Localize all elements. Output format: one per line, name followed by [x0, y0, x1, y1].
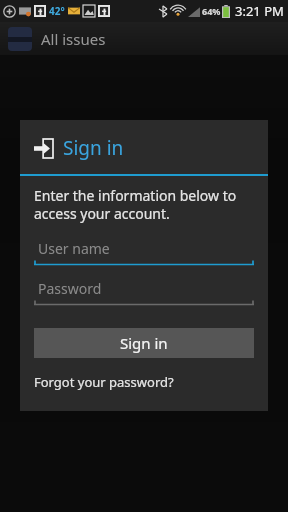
staticText: All issues: [41, 29, 106, 49]
staticText: Sign in: [63, 135, 124, 161]
staticText: Sign in: [120, 333, 168, 353]
staticText: User name: [38, 239, 110, 258]
staticText: 3:21 PM: [235, 2, 284, 20]
button[interactable]: Forgot your password?: [34, 373, 174, 391]
button[interactable]: All issues: [0, 27, 116, 51]
button[interactable]: Sign in: [34, 328, 254, 358]
staticText: 42°: [49, 4, 65, 18]
button[interactable]: Password: [34, 277, 254, 306]
staticText: Password: [38, 279, 102, 298]
button[interactable]: User name: [34, 237, 254, 266]
other: Sign in: [34, 139, 53, 158]
staticText: Enter the information below to access yo…: [34, 186, 254, 223]
staticText: 64%: [202, 5, 221, 17]
